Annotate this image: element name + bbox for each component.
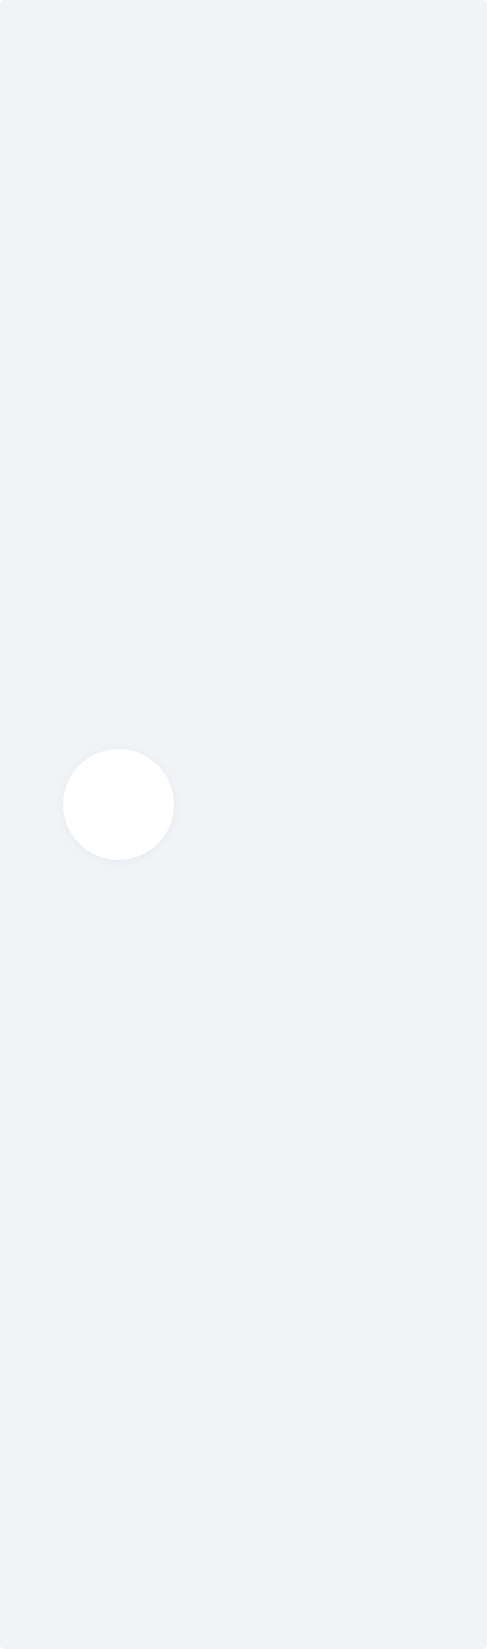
button[interactable]: Avatar <box>63 749 174 860</box>
